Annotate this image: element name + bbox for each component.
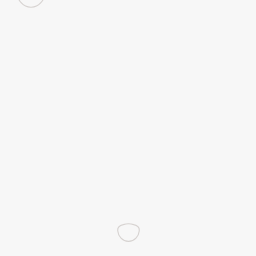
button[interactable]: Placeholder shape [117, 223, 140, 242]
button[interactable]: Placeholder shape [16, 0, 46, 8]
